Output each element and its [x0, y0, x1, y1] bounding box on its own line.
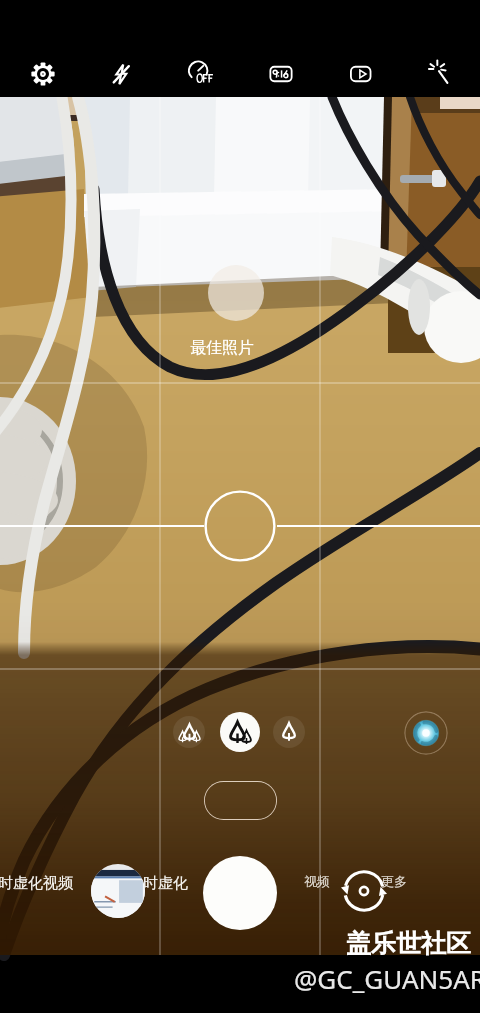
button[interactable]: Timer off [178, 51, 224, 97]
staticText: 时虚化视频 [0, 874, 73, 893]
staticText: 更多 [381, 873, 407, 889]
button[interactable]: Settings [20, 51, 66, 97]
button[interactable]: Focus [204, 490, 276, 562]
button[interactable]: Filters [416, 51, 462, 97]
button[interactable]: Flash off [98, 51, 144, 97]
staticText: @GC_GUAN5AR [294, 961, 480, 996]
button[interactable]: Current mode [204, 781, 277, 820]
staticText: 最佳照片 [190, 338, 254, 358]
staticText: 盖乐世社区 [346, 928, 471, 959]
button[interactable]: Wide zoom, selected [220, 712, 260, 752]
staticText: 视频 [304, 873, 330, 889]
button[interactable]: Best photo suggestion [208, 265, 264, 321]
button[interactable]: Shutter [203, 856, 277, 930]
button[interactable]: Telephoto zoom [273, 716, 305, 748]
button[interactable]: Motion photo [338, 51, 384, 97]
button[interactable]: Aspect ratio 9 by 16 [258, 51, 304, 97]
button[interactable]: Switch camera [340, 867, 388, 915]
button[interactable]: Scene optimizer [404, 711, 448, 755]
button[interactable]: Gallery [91, 864, 145, 918]
staticText: 时虚化 [143, 874, 188, 893]
button[interactable]: Ultra wide zoom [173, 716, 205, 748]
